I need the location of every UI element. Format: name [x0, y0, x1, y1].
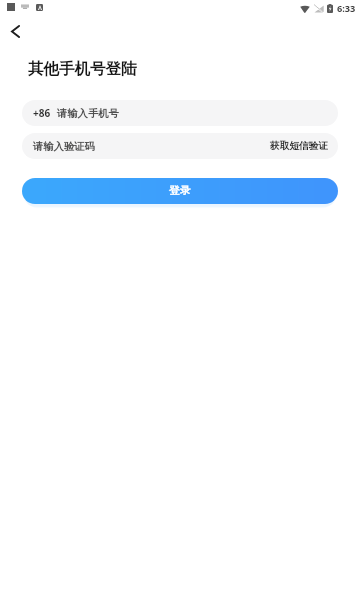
button[interactable]: Back — [2, 18, 28, 44]
staticText: 请输入验证码 — [33, 140, 95, 153]
button[interactable]: 登录 — [22, 178, 338, 204]
staticText: 登录 — [169, 184, 191, 198]
button[interactable]: 获取短信验证 — [262, 133, 338, 159]
staticText: 6:33 — [337, 2, 356, 15]
staticText: 请输入手机号 — [57, 107, 119, 120]
staticText: 其他手机号登陆 — [28, 59, 137, 79]
button[interactable]: +86 — [22, 100, 338, 126]
staticText: 获取短信验证 — [270, 140, 329, 152]
staticText: +86 — [33, 106, 51, 120]
